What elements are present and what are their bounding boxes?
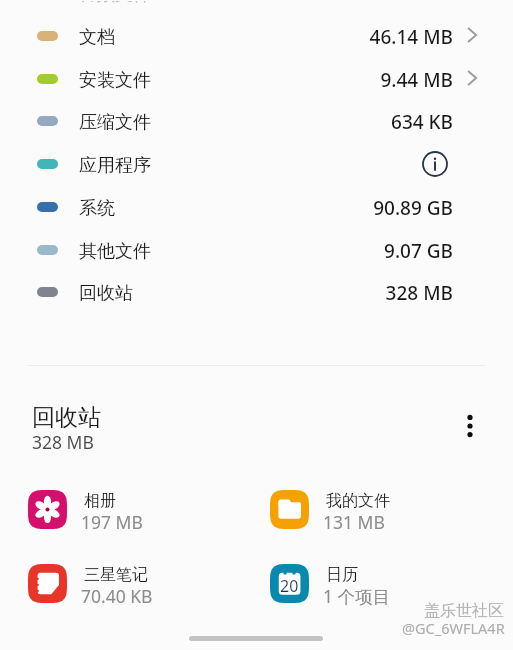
button[interactable]: More options: [450, 406, 490, 446]
staticText: 日历: [326, 565, 358, 585]
staticText: 634 KB: [253, 109, 453, 135]
button[interactable]: Info: [420, 149, 450, 179]
staticText: @GC_6WFLA4R: [402, 618, 505, 638]
staticText: 系统: [79, 197, 115, 220]
button[interactable]: 其他文件: [0, 229, 513, 272]
staticText: 90.89 GB: [253, 195, 453, 221]
staticText: 相册: [84, 491, 116, 511]
staticText: 46.14 MB: [253, 24, 453, 50]
button[interactable]: 我的文件: [242, 482, 484, 537]
staticText: 压缩文件: [79, 111, 151, 134]
button[interactable]: 系统: [0, 186, 513, 229]
staticText: 70.40 KB: [81, 584, 153, 608]
staticText: 回收站: [79, 282, 133, 305]
staticText: 三星笔记: [84, 565, 148, 585]
button[interactable]: 应用程序: [0, 143, 513, 186]
button[interactable]: 回收站: [20, 395, 220, 455]
staticText: 131 MB: [323, 510, 385, 534]
staticText: 9.44 MB: [253, 67, 453, 93]
button[interactable]: 文档: [0, 15, 513, 58]
button[interactable]: 相册: [0, 482, 242, 537]
staticText: 音频文件: [79, 0, 151, 6]
staticText: 文档: [79, 26, 115, 49]
staticText: 回收站: [32, 403, 101, 432]
staticText: 我的文件: [326, 491, 390, 511]
staticText: 其他文件: [79, 240, 151, 263]
button[interactable]: 回收站: [0, 271, 513, 314]
staticText: 1 个项目: [323, 584, 391, 608]
staticText: 20: [280, 575, 299, 597]
staticText: 197 MB: [81, 510, 143, 534]
button[interactable]: 三星笔记: [0, 556, 242, 611]
staticText: 安装文件: [79, 69, 151, 92]
button[interactable]: 压缩文件: [0, 100, 513, 143]
staticText: 9.07 GB: [253, 238, 453, 264]
staticText: 328 MB: [32, 430, 94, 454]
staticText: 328 MB: [253, 280, 453, 306]
button[interactable]: 20: [242, 556, 484, 611]
staticText: 应用程序: [79, 154, 151, 177]
staticText: 盖乐世社区: [424, 601, 504, 621]
button[interactable]: 安装文件: [0, 58, 513, 101]
